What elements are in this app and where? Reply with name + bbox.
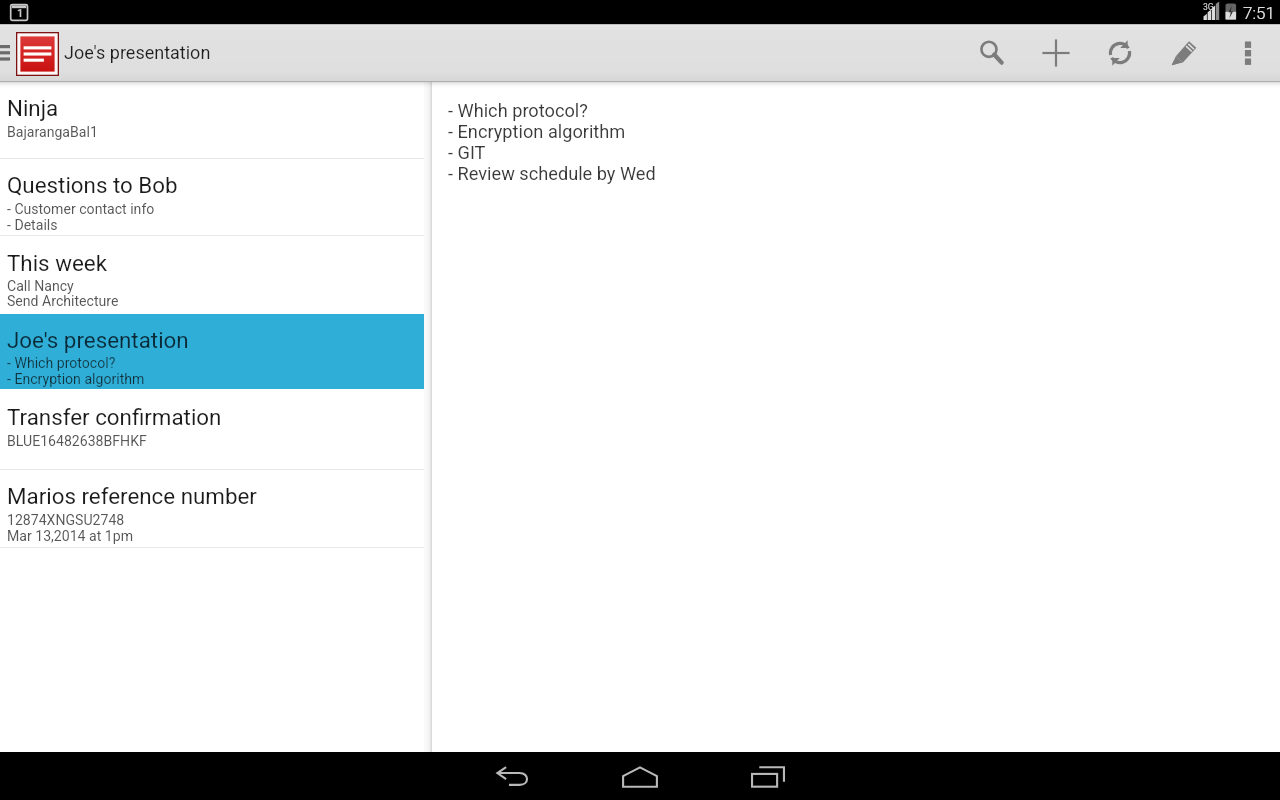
staticText: BajarangaBal1 xyxy=(7,124,98,141)
staticText: Ninja xyxy=(7,95,59,121)
staticText: - Encryption algorithm xyxy=(448,121,626,142)
staticText: - Which protocol? xyxy=(448,100,588,121)
staticText: - Details xyxy=(7,217,58,234)
button[interactable]: Questions to Bob xyxy=(0,158,424,235)
staticText: Transfer confirmation xyxy=(7,404,222,430)
button[interactable]: Navigate up xyxy=(0,25,211,82)
staticText: - Review schedule by Wed xyxy=(448,163,656,184)
button[interactable]: Add xyxy=(1024,25,1088,82)
staticText: Mar 13,2014 at 1pm xyxy=(7,528,134,545)
staticText: - Encryption algorithm xyxy=(7,371,145,388)
staticText: Questions to Bob xyxy=(7,172,178,198)
button[interactable]: Edit xyxy=(1152,25,1216,82)
staticText: Joe's presentation xyxy=(64,42,211,63)
staticText: Send Architecture xyxy=(7,293,119,310)
staticText: 3G xyxy=(1203,2,1214,12)
other: Navigate up xyxy=(0,43,11,65)
button[interactable]: Recent apps xyxy=(732,752,804,800)
staticText: This week xyxy=(7,250,107,276)
button[interactable]: Refresh xyxy=(1088,25,1152,82)
button[interactable]: Ninja xyxy=(0,81,424,158)
staticText: 7:51 xyxy=(1243,3,1275,23)
button[interactable]: Back xyxy=(476,752,548,800)
button[interactable]: Search xyxy=(960,25,1024,82)
button[interactable]: Marios reference number xyxy=(0,469,424,547)
staticText: - GIT xyxy=(448,142,486,163)
staticText: Marios reference number xyxy=(7,483,257,509)
staticText: - Customer contact info xyxy=(7,201,155,218)
button[interactable]: This week xyxy=(0,235,424,314)
staticText: Joe's presentation xyxy=(7,327,189,353)
button[interactable]: Home xyxy=(604,752,676,800)
staticText: BLUE16482638BFHKF xyxy=(7,433,147,450)
staticText: 12874XNGSU2748 xyxy=(7,512,125,529)
button[interactable]: Joe's presentation xyxy=(0,314,424,389)
staticText: - Which protocol? xyxy=(7,355,116,372)
staticText: Call Nancy xyxy=(7,278,74,295)
button[interactable]: More options xyxy=(1216,25,1280,82)
staticText: 1 xyxy=(17,7,24,20)
button[interactable]: Transfer confirmation xyxy=(0,389,424,469)
